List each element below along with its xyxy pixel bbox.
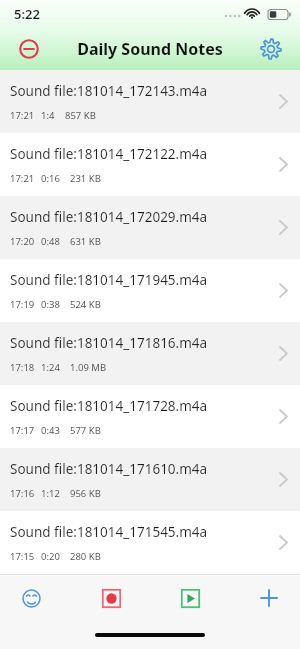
staticText: 17:21: [10, 109, 35, 122]
staticText: Sound file:181014_171816.m4a: [10, 334, 208, 352]
staticText: 231 KB: [70, 172, 101, 185]
staticText: Daily Sound Notes: [46, 38, 254, 60]
button[interactable]: Sound file:181014_171545.m4a: [0, 511, 300, 574]
staticText: 5:22: [14, 5, 40, 23]
staticText: 17:21: [10, 172, 35, 185]
staticText: 17:18: [10, 361, 35, 374]
staticText: 1:24: [41, 361, 60, 374]
button[interactable]: Sound file:181014_171610.m4a: [0, 448, 300, 511]
staticText: 1:12: [41, 487, 60, 500]
staticText: 631 KB: [70, 235, 101, 248]
staticText: 17:16: [10, 487, 35, 500]
button[interactable]: Sound file:181014_171945.m4a: [0, 259, 300, 322]
button[interactable]: Play: [173, 581, 207, 615]
staticText: Sound file:181014_171545.m4a: [10, 523, 208, 541]
staticText: 17:20: [10, 235, 35, 248]
button[interactable]: Record: [94, 581, 128, 615]
staticText: 0:48: [41, 235, 60, 248]
button[interactable]: Sound file:181014_171816.m4a: [0, 322, 300, 385]
staticText: 1:4: [41, 109, 55, 122]
button[interactable]: Sound file:181014_172143.m4a: [0, 70, 300, 133]
button[interactable]: Add: [252, 581, 286, 615]
staticText: 280 KB: [70, 550, 101, 563]
staticText: 0:20: [41, 550, 60, 563]
staticText: 857 KB: [65, 109, 96, 122]
staticText: 1.09 MB: [70, 361, 107, 374]
staticText: 0:16: [41, 172, 60, 185]
staticText: 956 KB: [70, 487, 101, 500]
button[interactable]: Mood: [14, 581, 48, 615]
staticText: 17:17: [10, 424, 35, 437]
staticText: Sound file:181014_172029.m4a: [10, 208, 208, 226]
staticText: 17:15: [10, 550, 35, 563]
staticText: 0:43: [41, 424, 60, 437]
button[interactable]: Settings: [254, 32, 288, 66]
button[interactable]: Sound file:181014_172122.m4a: [0, 133, 300, 196]
staticText: 524 KB: [70, 298, 101, 311]
button[interactable]: Sound file:181014_171728.m4a: [0, 385, 300, 448]
staticText: Sound file:181014_172143.m4a: [10, 82, 208, 100]
staticText: Sound file:181014_171728.m4a: [10, 397, 208, 415]
button[interactable]: Sound file:181014_172029.m4a: [0, 196, 300, 259]
staticText: Sound file:181014_172122.m4a: [10, 145, 208, 163]
staticText: Sound file:181014_171945.m4a: [10, 271, 208, 289]
button[interactable]: Delete: [12, 32, 46, 66]
staticText: 577 KB: [70, 424, 101, 437]
staticText: Sound file:181014_171610.m4a: [10, 460, 208, 478]
staticText: 0:38: [41, 298, 60, 311]
staticText: 17:19: [10, 298, 35, 311]
